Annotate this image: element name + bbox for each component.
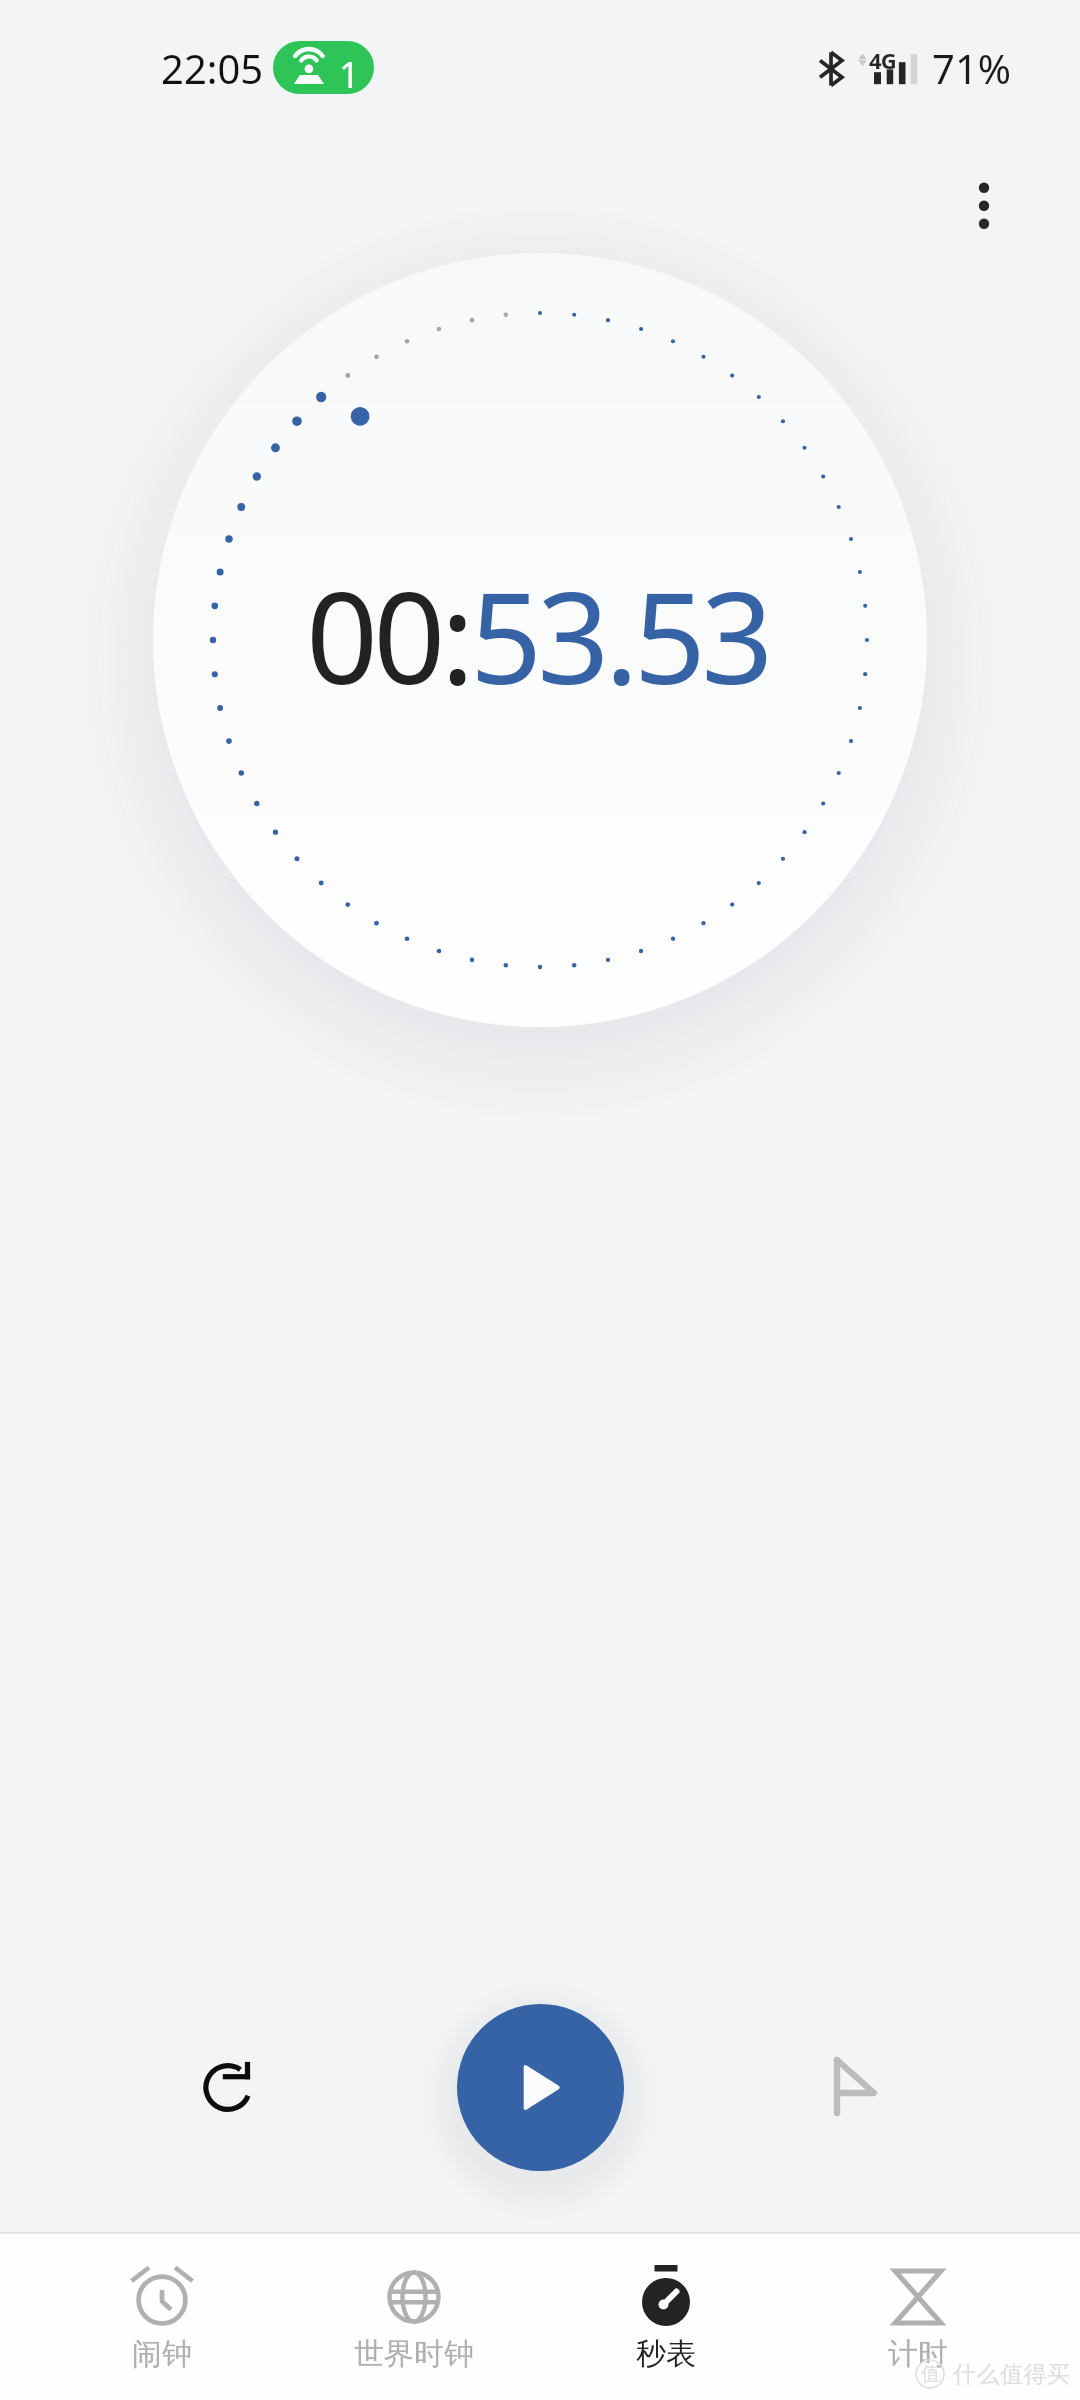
staticText: 值	[921, 2362, 940, 2386]
staticText: 闹钟	[132, 2335, 192, 2373]
staticText: 22:05	[161, 41, 264, 95]
staticText: 秒表	[636, 2335, 696, 2373]
button[interactable]: Reset	[169, 2029, 289, 2149]
staticText: 什么值得买	[953, 2360, 1071, 2389]
staticText: 计时	[888, 2335, 948, 2373]
button[interactable]: 闹钟	[36, 2234, 288, 2400]
button[interactable]: 世界时钟	[288, 2234, 540, 2400]
staticText: 71%	[932, 41, 1011, 95]
button[interactable]: More options	[938, 143, 1028, 233]
button[interactable]: Start	[457, 2004, 624, 2171]
staticText: 53.53	[470, 549, 769, 721]
staticText: 00:	[306, 549, 470, 721]
button[interactable]: Lap	[790, 2029, 910, 2149]
staticText: 4G	[869, 45, 896, 75]
staticText: 1	[339, 50, 360, 94]
staticText: 世界时钟	[354, 2335, 474, 2373]
button[interactable]: 计时	[792, 2234, 1044, 2400]
button[interactable]: 秒表	[540, 2234, 792, 2400]
